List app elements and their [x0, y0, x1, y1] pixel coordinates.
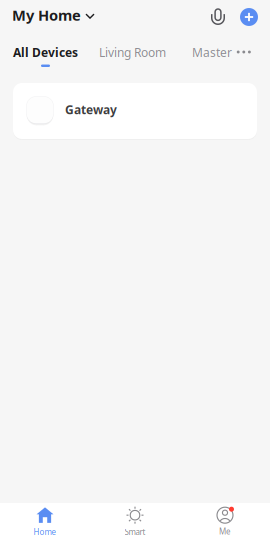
staticText: My Home — [12, 5, 81, 25]
staticText: Smart — [124, 527, 145, 537]
button[interactable]: Voice control — [204, 0, 232, 34]
button[interactable]: Me — [180, 501, 270, 540]
button[interactable]: My Home — [0, 0, 104, 34]
staticText: Home — [33, 527, 56, 537]
staticText: Living Room — [99, 44, 166, 60]
button[interactable]: All Devices — [0, 34, 88, 70]
button[interactable]: Living Room — [88, 34, 176, 70]
button[interactable]: Home — [0, 501, 90, 540]
staticText: Me — [219, 526, 231, 537]
staticText: Gateway — [65, 101, 117, 117]
button[interactable]: More rooms — [235, 34, 270, 70]
button[interactable]: Add device — [232, 0, 270, 34]
button[interactable]: Master — [176, 34, 234, 70]
button[interactable]: Gateway — [13, 83, 257, 139]
staticText: Master — [192, 44, 232, 60]
staticText: All Devices — [13, 44, 78, 60]
button[interactable]: Smart — [90, 501, 180, 540]
